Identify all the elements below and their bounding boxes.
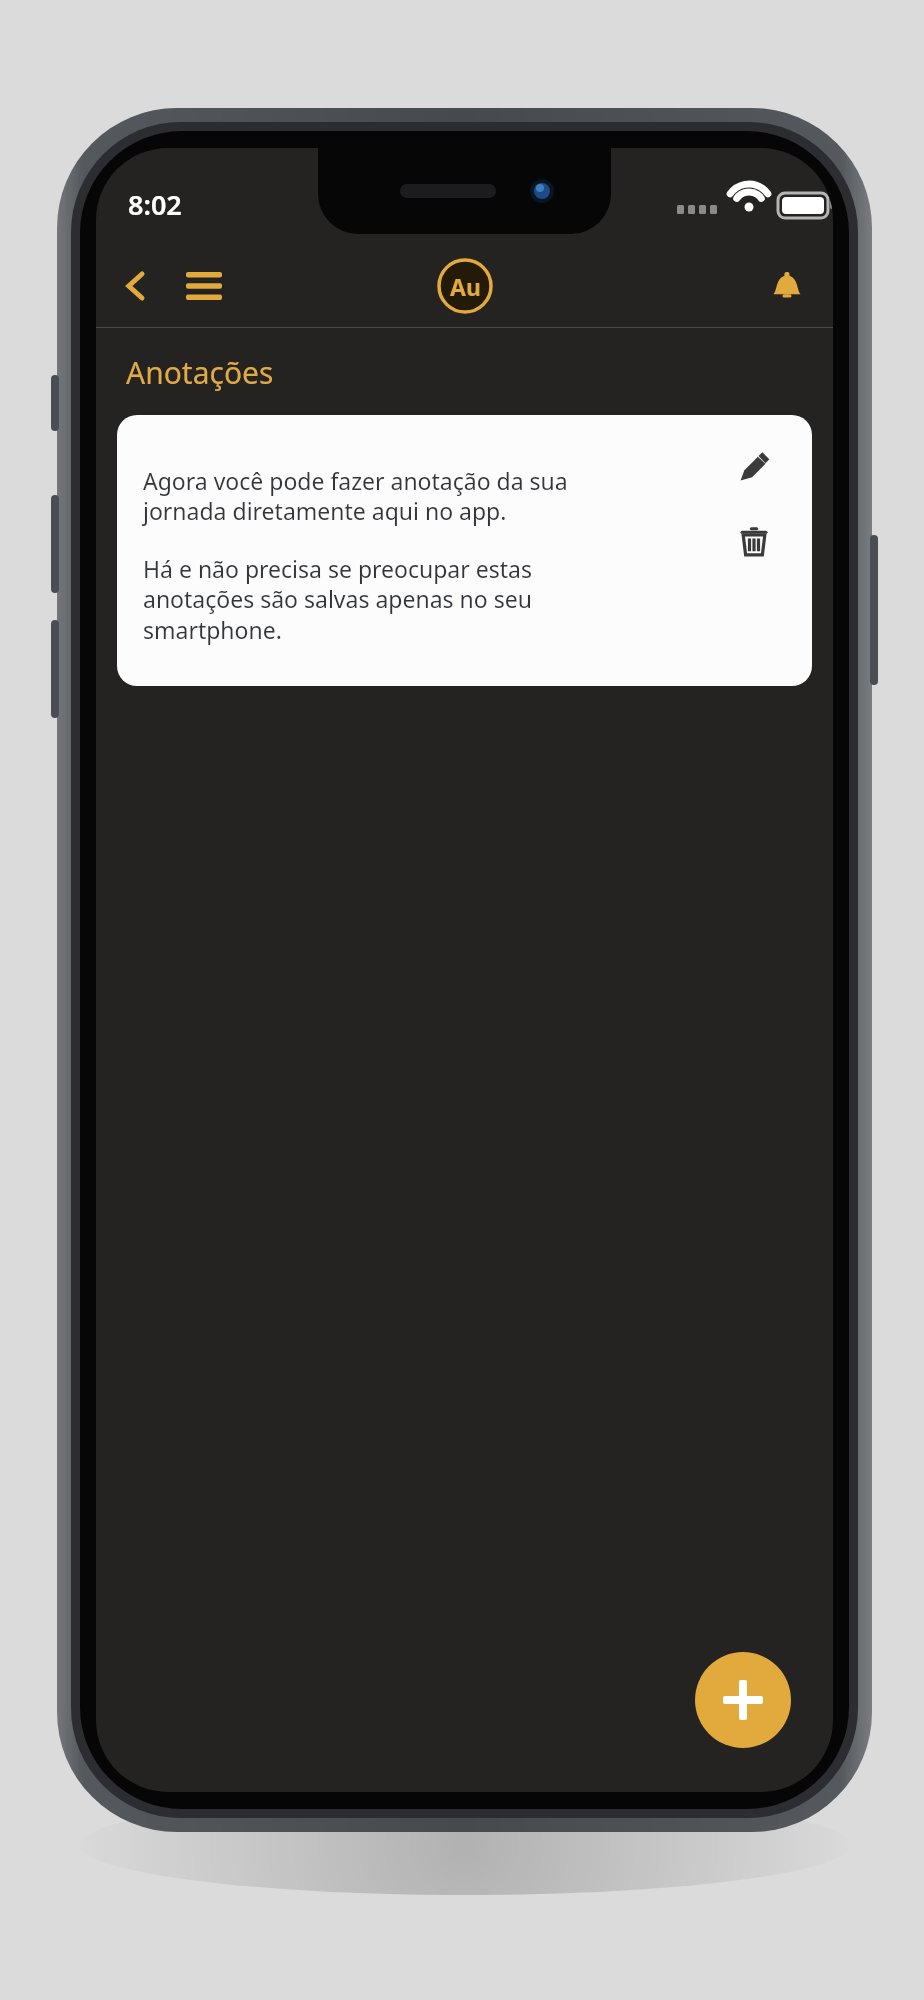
button[interactable]: Logo Au <box>437 258 493 314</box>
staticText: Agora você pode fazer anotação da sua jo… <box>143 465 568 527</box>
staticText: Anotações <box>126 352 274 393</box>
button[interactable]: Edit note <box>732 445 776 489</box>
button[interactable]: Notifications <box>759 258 815 314</box>
button[interactable]: Menu <box>174 256 234 316</box>
button[interactable]: Add note <box>695 1652 791 1748</box>
staticText: Há e não precisa se preocupar estas anot… <box>143 553 532 646</box>
button[interactable]: Agora você pode fazer anotação da sua jo… <box>117 415 812 686</box>
staticText: Au <box>450 271 481 302</box>
button[interactable]: Delete note <box>732 519 776 563</box>
staticText: 8:02 <box>128 186 182 223</box>
button[interactable]: Back <box>108 258 164 314</box>
